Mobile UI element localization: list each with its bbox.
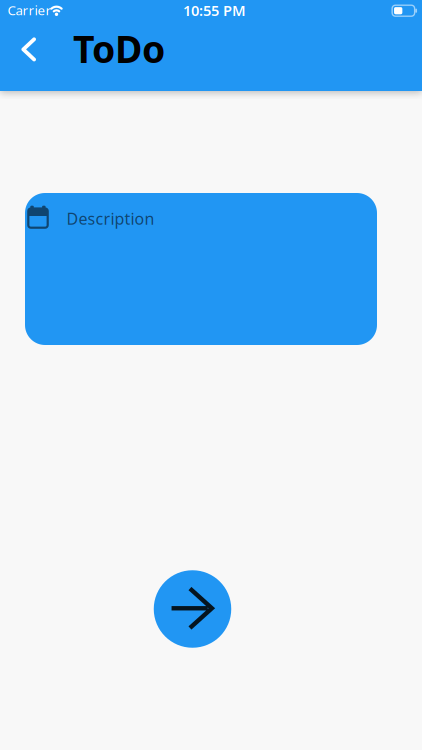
staticText: ToDo: [73, 24, 165, 73]
staticText: Carrier: [7, 1, 51, 19]
button[interactable]: Back: [11, 27, 47, 71]
button[interactable]: Description: [25, 193, 377, 345]
button[interactable]: Submit: [154, 570, 231, 648]
staticText: 10:55 PM: [183, 0, 246, 20]
staticText: Description: [66, 208, 154, 229]
